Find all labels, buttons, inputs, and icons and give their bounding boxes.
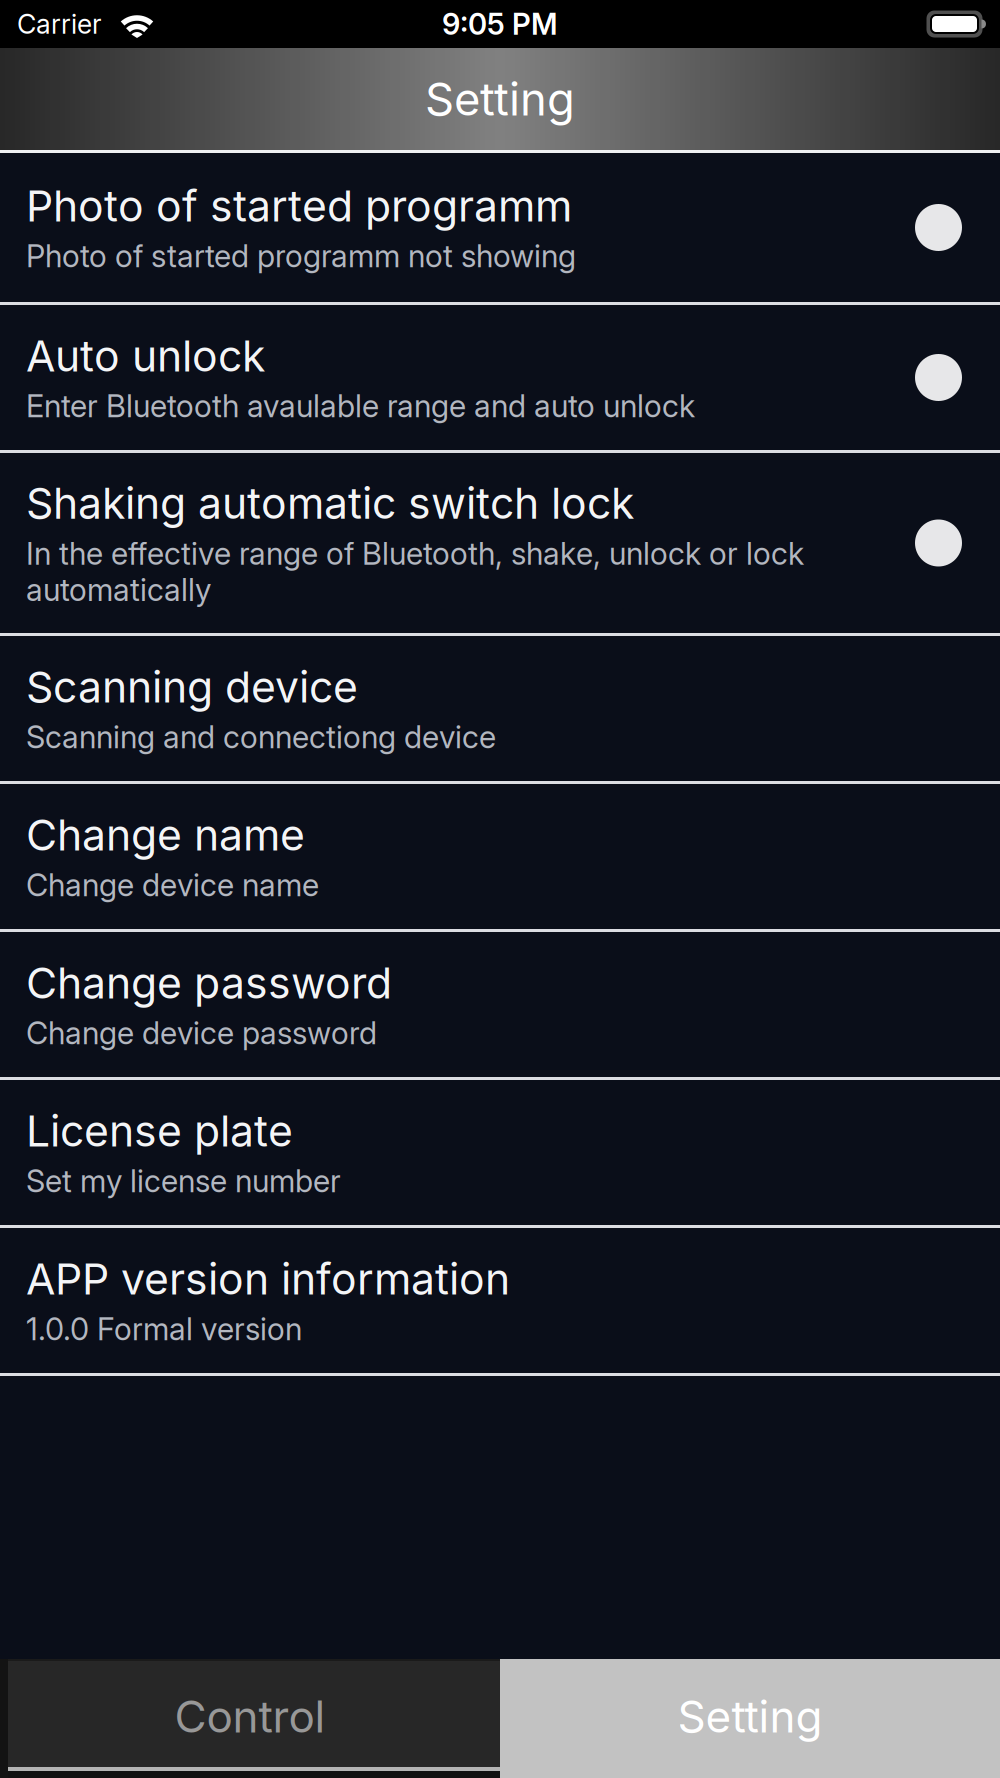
staticText: Photo of started programm (26, 181, 572, 231)
staticText: Set my license number (26, 1163, 341, 1199)
staticText: License plate (26, 1106, 293, 1156)
staticText: Change device password (26, 1015, 377, 1051)
staticText: 1.0.0 Formal version (26, 1311, 302, 1347)
staticText: Auto unlock (26, 331, 265, 381)
staticText: Change device name (26, 867, 319, 903)
staticText: Change password (26, 958, 392, 1008)
staticText: Setting (425, 72, 575, 126)
staticText: Scanning and connectiong device (26, 719, 496, 755)
staticText: Photo of started programm not showing (26, 238, 576, 274)
staticText: Scanning device (26, 662, 358, 712)
staticText: Carrier (17, 8, 102, 40)
staticText: Change name (26, 810, 305, 860)
staticText: In the effective range of Bluetooth, sha… (26, 535, 804, 608)
staticText: 9:05 PM (442, 7, 558, 41)
staticText: Enter Bluetooth avaulable range and auto… (26, 388, 695, 424)
staticText: Control (174, 1690, 325, 1742)
staticText: Shaking automatic switch lock (26, 478, 634, 528)
staticText: Setting (677, 1690, 822, 1742)
staticText: APP version information (26, 1254, 510, 1304)
